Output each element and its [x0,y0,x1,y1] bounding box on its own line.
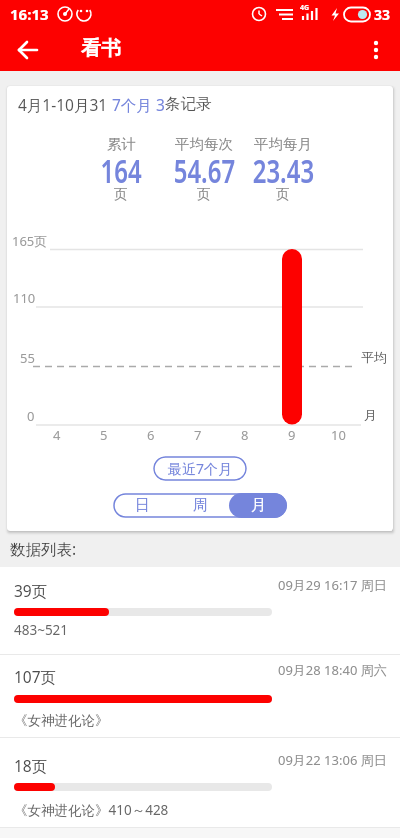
staticText: 月 [251,496,266,515]
staticText: 16:13 [10,4,49,24]
staticText: 483~521 [14,621,69,639]
staticText: 39页 [14,580,48,601]
staticText: 165页 [12,232,48,250]
button[interactable]: 周 [171,493,229,518]
staticText: 09月22 13:06 周日 [278,751,387,769]
staticText: 日 [135,496,150,515]
staticText: 9 [288,426,296,444]
staticText: 看书 [81,36,121,61]
button[interactable]: 日 [113,493,171,518]
staticText: 数据列表: [10,538,77,559]
staticText: 8 [241,426,249,444]
button[interactable]: 18页 [0,737,400,828]
button[interactable]: 39页 [0,567,400,655]
staticText: 平均每次 [175,135,233,153]
staticText: 7个月 [112,94,156,115]
staticText: 4月1-10月31 [18,94,112,115]
staticText: 页 [197,186,211,203]
staticText: 页 [276,186,290,203]
staticText: 107页 [14,666,57,687]
staticText: 164 [101,149,142,192]
button[interactable] [10,32,46,68]
staticText: 6 [147,426,155,444]
staticText: 4 [53,426,61,444]
staticText: 平均每月 [254,135,312,153]
staticText: 条记录 [165,94,212,114]
staticText: 累计 [107,135,136,153]
staticText: 3 [156,94,165,115]
staticText: 4G [300,3,310,13]
button[interactable] [358,32,394,68]
staticText: 平均 [361,349,387,365]
staticText: 09月29 16:17 周日 [278,576,387,594]
staticText: 《女神进化论》 [14,712,109,729]
staticText: 5 [100,426,108,444]
staticText: 最近7个月 [168,459,233,478]
staticText: 《女神进化论》410～428 [14,801,169,819]
staticText: 月 [364,407,377,423]
staticText: 110 [13,289,36,307]
staticText: 10 [331,426,346,444]
button[interactable]: 最近7个月 [153,456,247,481]
staticText: 7 [194,426,202,444]
staticText: 周 [193,496,208,515]
button[interactable]: 107页 [0,655,400,738]
staticText: 0 [27,407,35,425]
staticText: 54.67 [174,149,235,192]
staticText: 23.43 [253,149,314,192]
staticText: 页 [114,186,128,203]
staticText: 55 [20,349,35,367]
button[interactable]: 月 [229,493,287,518]
staticText: 09月28 18:40 周六 [278,661,387,679]
staticText: 33 [374,5,391,24]
staticText: 18页 [14,755,48,776]
